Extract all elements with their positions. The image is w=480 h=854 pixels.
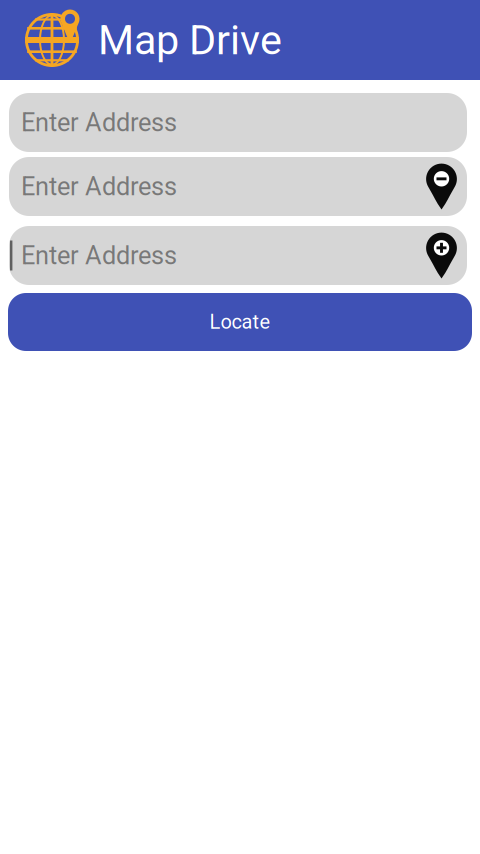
button[interactable]: Add stop (426, 232, 467, 279)
button[interactable]: Enter Address (9, 157, 467, 216)
button[interactable]: Remove stop (426, 163, 467, 210)
staticText: Enter Address (21, 172, 177, 201)
button[interactable]: Enter Address (9, 93, 467, 152)
staticText: Enter Address (21, 108, 177, 137)
button[interactable]: Enter Address (9, 226, 467, 285)
staticText: Map Drive (98, 16, 282, 64)
staticText: Enter Address (21, 241, 177, 270)
staticText: Locate (209, 310, 270, 334)
button[interactable]: Locate (8, 293, 472, 351)
